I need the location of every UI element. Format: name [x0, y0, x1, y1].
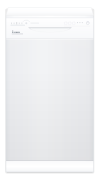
- button[interactable]: Freestanding slimline dishwasher, white: [0, 0, 100, 180]
